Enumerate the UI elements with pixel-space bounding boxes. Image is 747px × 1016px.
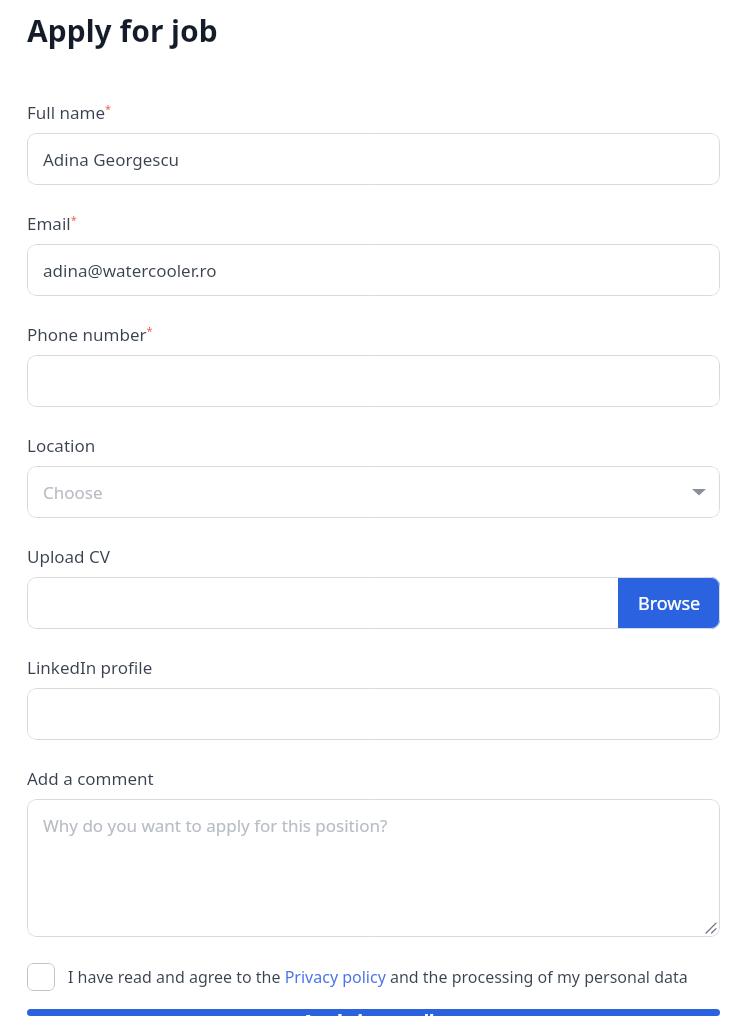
button[interactable]: Apply internally	[27, 1009, 720, 1016]
staticText: Apply for job	[27, 10, 218, 51]
staticText: Email*	[27, 212, 77, 235]
staticText: LinkedIn profile	[27, 656, 153, 679]
staticText: Upload CV	[27, 545, 110, 568]
button[interactable]: Email	[27, 244, 720, 296]
button[interactable]: Location, Choose	[27, 466, 720, 518]
staticText: Browse	[638, 591, 701, 616]
staticText: Add a comment	[27, 767, 154, 790]
button[interactable]: Browse	[618, 577, 720, 629]
staticText: Why do you want to apply for this positi…	[43, 814, 388, 837]
button[interactable]: Phone number	[27, 355, 720, 407]
staticText: Adina Georgescu	[43, 148, 180, 171]
staticText: I have read and agree to the Privacy pol…	[68, 966, 688, 988]
staticText: Apply internally	[302, 1009, 445, 1016]
staticText: Location	[27, 434, 96, 457]
button[interactable]: LinkedIn profile	[27, 688, 720, 740]
button[interactable]: Add a comment	[27, 799, 720, 937]
staticText: adina@watercooler.ro	[43, 259, 217, 282]
staticText: Full name*	[27, 101, 112, 124]
button[interactable]: Full name	[27, 133, 720, 185]
staticText: Choose	[43, 481, 103, 504]
button[interactable]: I have read and agree to the Privacy pol…	[27, 963, 720, 991]
staticText: Phone number*	[27, 323, 153, 346]
